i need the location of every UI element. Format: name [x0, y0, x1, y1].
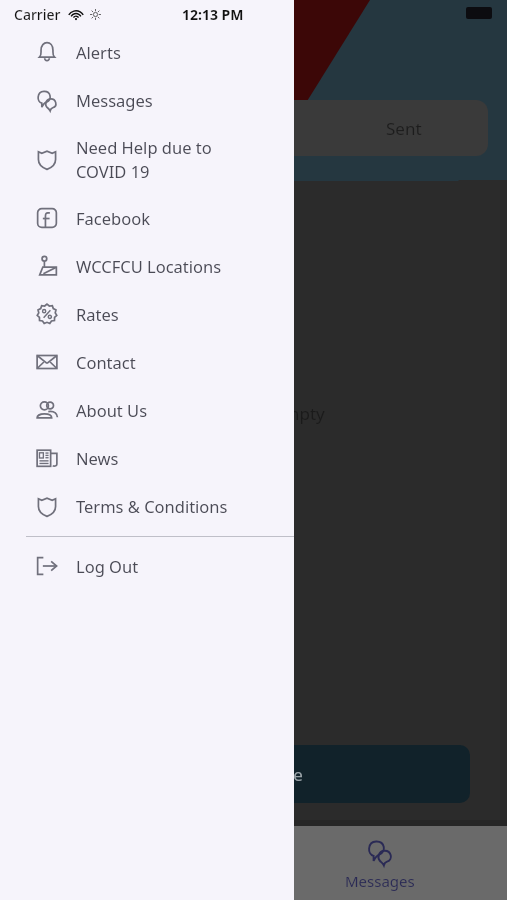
- button[interactable]: Messages: [253, 826, 507, 900]
- staticText: Facebook: [76, 207, 150, 229]
- staticText: Messages: [76, 89, 153, 111]
- staticText: News: [76, 447, 119, 469]
- staticText: Rates: [76, 303, 119, 325]
- button[interactable]: New Message: [24, 745, 470, 803]
- button[interactable]: About Us: [0, 386, 294, 434]
- button[interactable]: Rates: [0, 290, 294, 338]
- staticText: Messages: [345, 871, 415, 891]
- button[interactable]: Facebook: [0, 194, 294, 242]
- other: Battery: [466, 7, 492, 19]
- button[interactable]: News: [0, 434, 294, 482]
- button[interactable]: Sent: [319, 100, 488, 156]
- button[interactable]: Contact: [0, 338, 294, 386]
- staticText: Alerts: [76, 41, 121, 63]
- staticText: Need Help due to COVID 19: [76, 136, 212, 183]
- button[interactable]: Need Help due to COVID 19: [0, 124, 294, 194]
- staticText: Contact: [76, 351, 136, 373]
- button[interactable]: Alerts: [0, 28, 294, 76]
- button[interactable]: Terms & Conditions: [0, 482, 294, 530]
- staticText: New Message: [192, 763, 303, 786]
- staticText: Terms & Conditions: [76, 495, 228, 517]
- staticText: Sent box is empty: [183, 402, 325, 425]
- button[interactable]: Log Out: [0, 544, 294, 588]
- staticText: Sent: [386, 117, 422, 140]
- button[interactable]: WCCFCU Locations: [0, 242, 294, 290]
- staticText: Log Out: [76, 555, 139, 577]
- staticText: 12:13 PM: [182, 5, 244, 24]
- button[interactable]: Inbox: [150, 100, 319, 156]
- staticText: WCCFCU Locations: [76, 255, 222, 277]
- staticText: About Us: [76, 399, 148, 421]
- staticText: Carrier: [14, 5, 61, 24]
- button[interactable]: Messages: [0, 76, 294, 124]
